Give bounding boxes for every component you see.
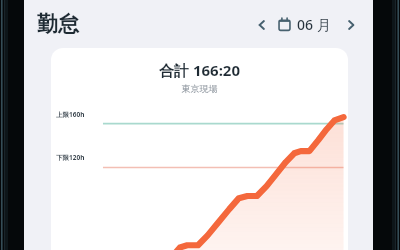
staticText: 下限120h — [56, 153, 85, 162]
button[interactable]: 次の月 — [339, 13, 363, 37]
staticText: 勤怠 — [37, 11, 79, 37]
staticText: 上限160h — [56, 110, 85, 119]
button[interactable]: カレンダー — [274, 11, 335, 38]
staticText: 東京現場 — [51, 83, 348, 94]
staticText: 合計 166:20 — [51, 60, 348, 80]
button[interactable]: 合計 166:20 — [51, 48, 348, 250]
button[interactable]: 前の月 — [250, 13, 274, 37]
staticText: 06 月 — [297, 15, 331, 34]
other: カレンダー — [278, 18, 291, 31]
